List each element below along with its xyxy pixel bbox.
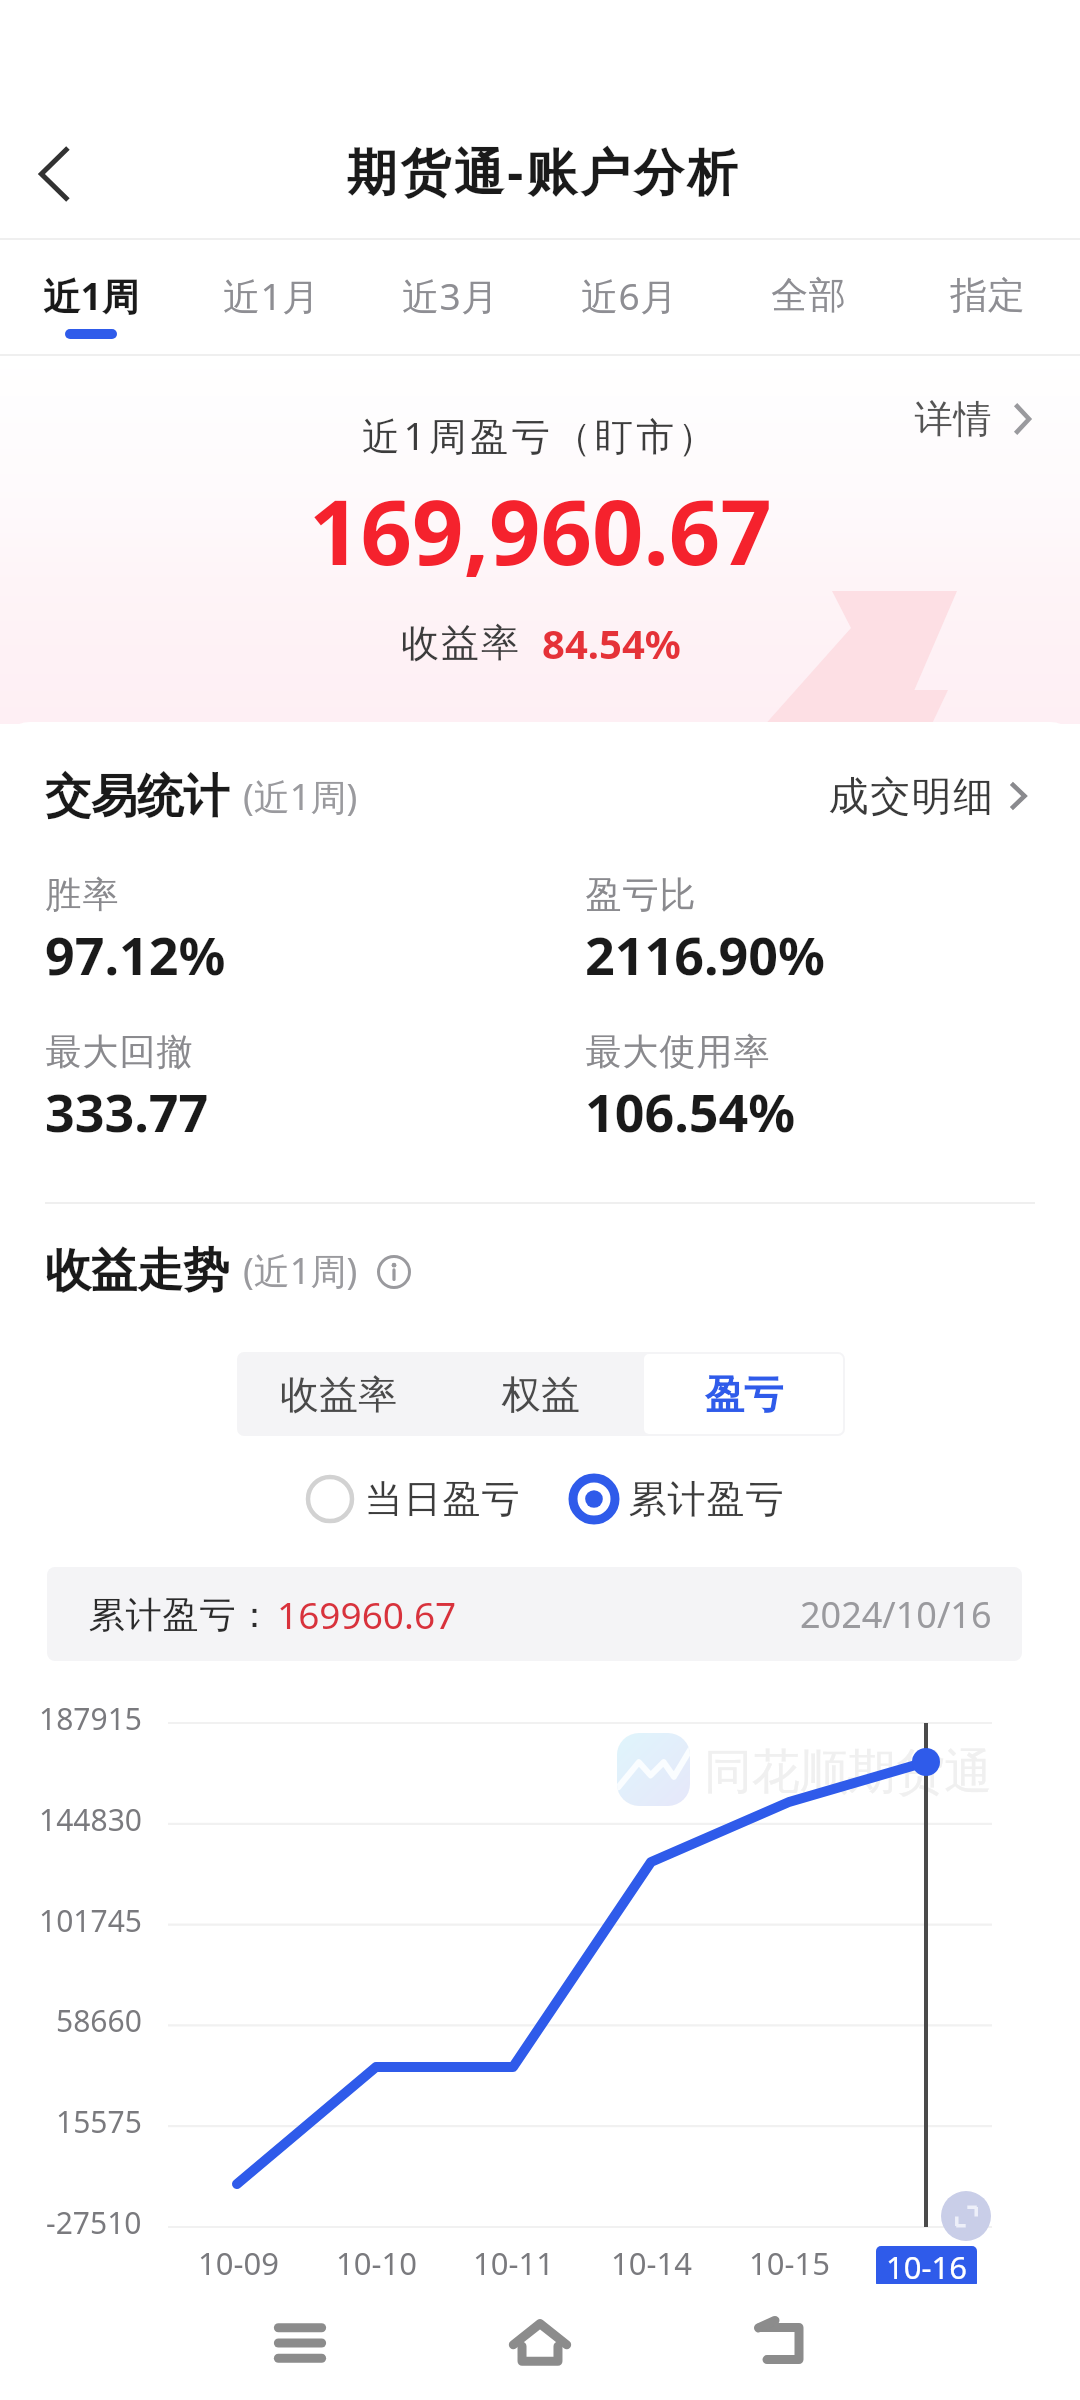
staticText: 收益率 [400,619,520,667]
staticText: 同花顺期货通 [704,1742,992,1802]
staticText: 盈亏 [705,1370,783,1419]
staticText: 58660 [56,2000,142,2041]
button[interactable]: 详情 [914,395,1038,443]
staticText: 10-09 [198,2242,279,2284]
button[interactable]: 近1月 [181,240,361,354]
staticText: 全部 [771,272,846,319]
staticText: (近1周) [243,1246,358,1295]
staticText: 近1周盈亏（盯市） [362,409,720,461]
button[interactable]: 全部 [719,240,898,354]
staticText: 盈亏比 [585,872,696,917]
staticText: 84.54% [542,616,681,670]
staticText: 成交明细 [828,771,994,821]
staticText: -27510 [46,2202,142,2243]
staticText: 10-16 [886,2246,967,2288]
button[interactable]: 成交明细 [828,771,1033,821]
staticText: 交易统计 [45,768,229,826]
button[interactable]: Back [16,135,94,213]
button[interactable]: 累计盈亏 [568,1470,784,1528]
staticText: 2116.90% [585,919,825,990]
staticText: 期货通-账户分析 [345,137,739,205]
staticText: 144830 [39,1799,142,1840]
staticText: 当日盈亏 [364,1475,520,1523]
button[interactable]: Back [720,2284,840,2400]
staticText: 最大使用率 [585,1029,770,1074]
staticText: 106.54% [585,1076,796,1147]
staticText: 169960.67 [277,1589,457,1639]
button[interactable]: 当日盈亏 [304,1470,520,1528]
staticText: (近1周) [243,772,358,821]
staticText: 详情 [914,395,992,443]
button[interactable]: 指定 [898,240,1077,354]
staticText: 累计盈亏 [628,1475,784,1523]
staticText: 收益走势 [45,1242,229,1300]
staticText: 累计盈亏： [88,1592,273,1637]
staticText: 101745 [39,1900,142,1941]
staticText: 近1月 [223,270,320,321]
staticText: 10-15 [749,2242,830,2284]
button[interactable]: 收益率 [237,1352,439,1436]
staticText: 187915 [39,1698,142,1739]
staticText: 97.12% [45,919,226,990]
button[interactable]: 近1周 [1,240,181,354]
button[interactable]: Info [376,1254,412,1290]
staticText: 10-11 [473,2242,554,2284]
staticText: 指定 [950,272,1025,319]
button[interactable]: Recent apps [240,2284,360,2400]
button[interactable]: 近3月 [361,240,540,354]
staticText: 近1周 [43,270,140,321]
button[interactable]: Full screen [941,2191,991,2241]
button[interactable]: Home [480,2284,600,2400]
staticText: 15575 [56,2101,142,2142]
staticText: 10-14 [611,2242,692,2284]
staticText: 最大回撤 [45,1029,193,1074]
staticText: 2024/10/16 [800,1590,992,1639]
staticText: 10-10 [336,2242,417,2284]
staticText: 近6月 [581,270,678,321]
button[interactable]: 近6月 [540,240,719,354]
staticText: 近3月 [402,270,499,321]
staticText: 权益 [502,1370,580,1419]
button[interactable]: 权益 [439,1352,642,1436]
button[interactable]: 盈亏 [644,1354,843,1434]
staticText: 胜率 [45,872,119,917]
staticText: 333.77 [45,1076,209,1147]
staticText: 收益率 [280,1370,397,1419]
staticText: 169,960.67 [309,469,772,592]
